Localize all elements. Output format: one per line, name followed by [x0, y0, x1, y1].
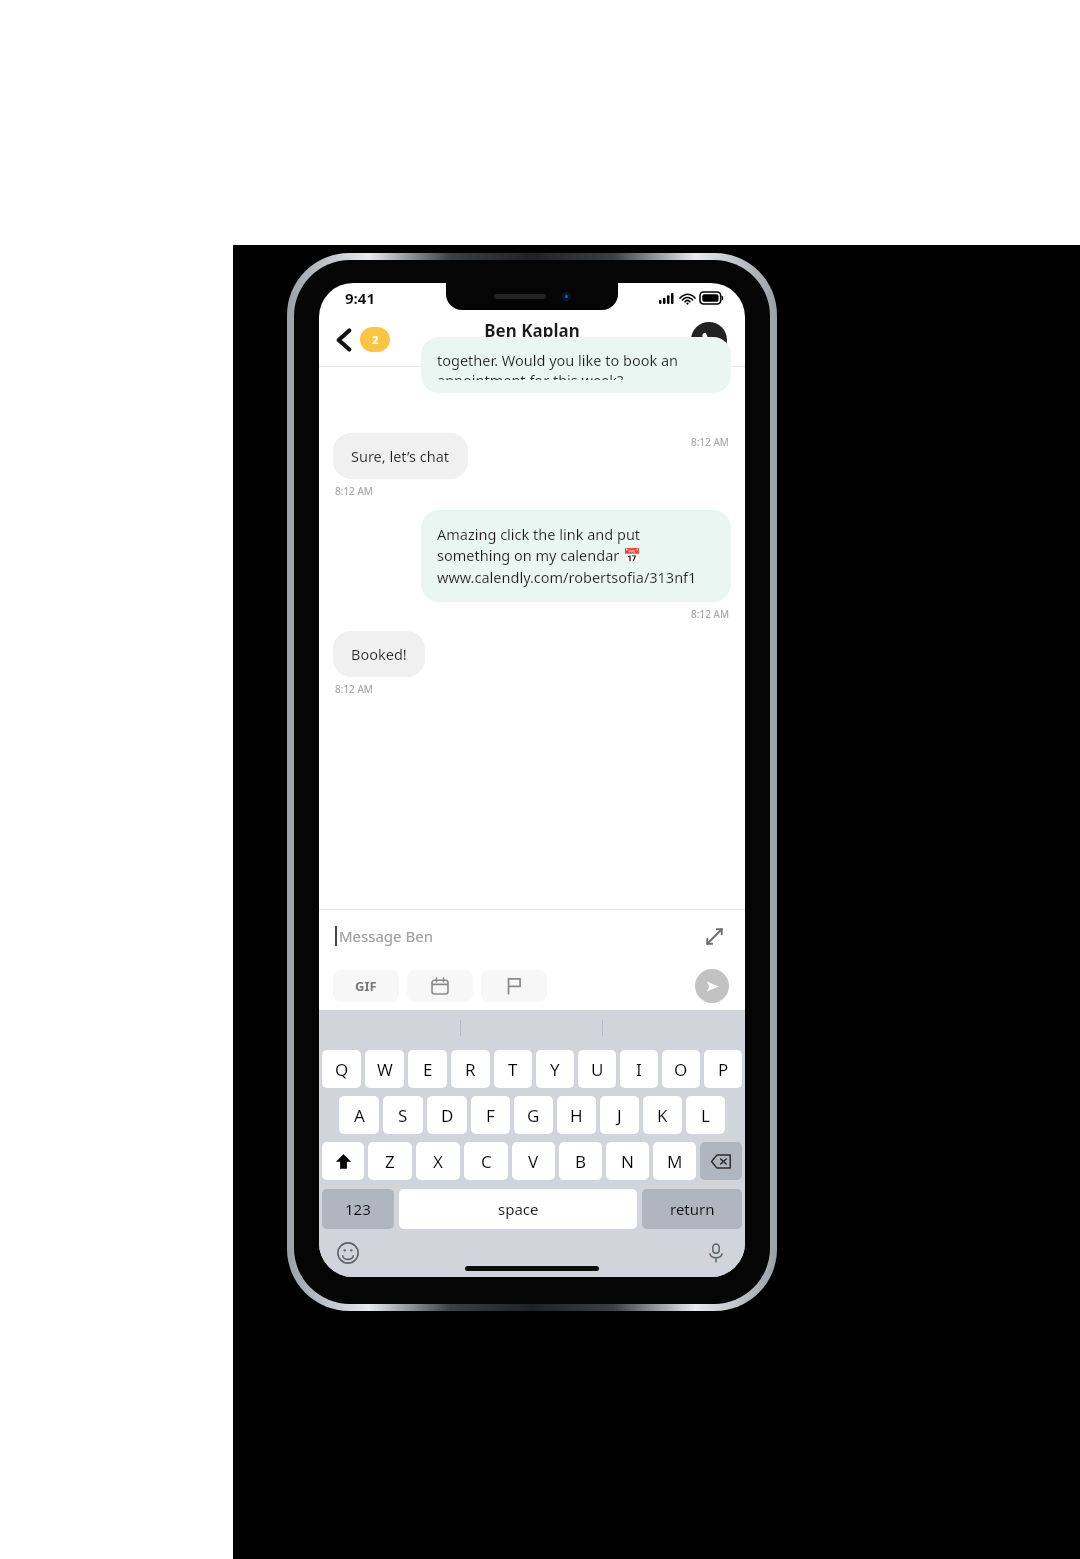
- button[interactable]: Calendar: [407, 970, 473, 1002]
- button[interactable]: Call: [691, 322, 727, 358]
- button[interactable]: A: [339, 1096, 379, 1134]
- button[interactable]: E: [408, 1050, 447, 1088]
- staticText: D: [441, 1104, 454, 1127]
- button[interactable]: F: [471, 1096, 510, 1134]
- button[interactable]: Sure, let’s chat: [333, 433, 468, 479]
- button[interactable]: Expand: [699, 921, 729, 951]
- staticText: GIF: [355, 977, 377, 995]
- staticText: P: [718, 1058, 729, 1081]
- button[interactable]: Y: [536, 1050, 574, 1088]
- staticText: T: [508, 1058, 518, 1081]
- button[interactable]: Flag: [481, 970, 547, 1002]
- staticText: O: [674, 1058, 688, 1081]
- button[interactable]: X: [416, 1142, 460, 1180]
- staticText: return: [670, 1199, 715, 1219]
- staticText: X: [433, 1150, 443, 1173]
- staticText: H: [570, 1104, 583, 1127]
- staticText: B: [575, 1150, 587, 1173]
- button[interactable]: 123: [322, 1189, 394, 1229]
- staticText: N: [621, 1150, 634, 1173]
- button[interactable]: R: [451, 1050, 490, 1088]
- staticText: Q: [335, 1058, 349, 1081]
- staticText: F: [486, 1104, 495, 1127]
- button[interactable]: J: [600, 1096, 639, 1134]
- button[interactable]: together. Would you like to book an appo…: [421, 337, 731, 393]
- button[interactable]: N: [606, 1142, 649, 1180]
- staticText: R: [465, 1058, 476, 1081]
- button[interactable]: Dictation: [703, 1240, 729, 1266]
- staticText: 9:41: [345, 288, 375, 308]
- staticText: I: [636, 1058, 642, 1081]
- button[interactable]: B: [559, 1142, 602, 1180]
- button[interactable]: T: [494, 1050, 532, 1088]
- button[interactable]: O: [662, 1050, 700, 1088]
- button[interactable]: C: [464, 1142, 508, 1180]
- staticText: 8:12 AM: [335, 682, 373, 696]
- button[interactable]: K: [643, 1096, 682, 1134]
- staticText: A: [354, 1104, 365, 1127]
- button[interactable]: Ben Kaplan: [484, 319, 580, 360]
- staticText: View details ›: [495, 344, 569, 360]
- staticText: 8:12 AM: [335, 484, 373, 498]
- button[interactable]: space: [399, 1189, 637, 1229]
- staticText: Amazing click the link and put something…: [437, 524, 715, 588]
- staticText: Ben Kaplan: [484, 319, 580, 342]
- button[interactable]: Back, 2 unread: [331, 323, 396, 356]
- button[interactable]: M: [653, 1142, 696, 1180]
- staticText: U: [591, 1058, 604, 1081]
- staticText: space: [498, 1199, 539, 1219]
- button[interactable]: U: [578, 1050, 616, 1088]
- button[interactable]: Booked!: [333, 631, 425, 677]
- staticText: 123: [345, 1199, 371, 1219]
- staticText: Sure, let’s chat: [351, 446, 450, 466]
- staticText: Booked!: [351, 644, 407, 664]
- staticText: Z: [385, 1150, 395, 1173]
- button[interactable]: H: [557, 1096, 596, 1134]
- button[interactable]: D: [427, 1096, 467, 1134]
- button[interactable]: Q: [322, 1050, 361, 1088]
- staticText: S: [398, 1104, 408, 1127]
- button[interactable]: V: [512, 1142, 555, 1180]
- button[interactable]: L: [686, 1096, 725, 1134]
- button[interactable]: Z: [368, 1142, 412, 1180]
- staticText: G: [527, 1104, 540, 1127]
- button[interactable]: Send: [695, 969, 729, 1003]
- staticText: E: [423, 1058, 433, 1081]
- button[interactable]: G: [514, 1096, 553, 1134]
- button[interactable]: W: [365, 1050, 404, 1088]
- button[interactable]: Shift: [322, 1142, 364, 1180]
- staticText: together. Would you like to book an appo…: [437, 350, 715, 380]
- staticText: 8:12 AM: [319, 607, 729, 621]
- button[interactable]: I: [620, 1050, 658, 1088]
- button[interactable]: S: [383, 1096, 423, 1134]
- staticText: C: [481, 1150, 492, 1173]
- staticText: 2: [372, 332, 379, 347]
- staticText: V: [528, 1150, 539, 1173]
- staticText: J: [617, 1104, 622, 1127]
- staticText: M: [667, 1150, 683, 1173]
- button[interactable]: return: [642, 1189, 742, 1229]
- button[interactable]: Message Ben: [339, 926, 433, 946]
- button[interactable]: Backspace: [700, 1142, 742, 1180]
- staticText: L: [701, 1104, 710, 1127]
- button[interactable]: GIF: [333, 970, 399, 1002]
- button[interactable]: Emoji: [335, 1240, 361, 1266]
- staticText: K: [657, 1104, 668, 1127]
- staticText: 8:12 AM: [691, 435, 729, 449]
- button[interactable]: P: [704, 1050, 742, 1088]
- button[interactable]: Amazing click the link and put something…: [421, 510, 731, 602]
- staticText: Y: [550, 1058, 560, 1081]
- staticText: W: [377, 1058, 393, 1081]
